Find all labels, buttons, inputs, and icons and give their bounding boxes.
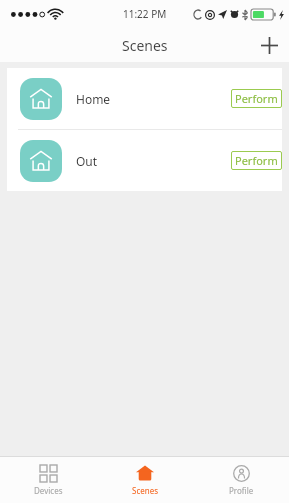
staticText: Scenes: [132, 485, 159, 496]
button[interactable]: Profile: [193, 457, 289, 503]
staticText: Perform: [235, 153, 278, 168]
staticText: Out: [76, 153, 98, 169]
button[interactable]: Perform: [231, 89, 282, 108]
staticText: Profile: [229, 485, 254, 496]
button[interactable]: Out: [7, 130, 282, 191]
staticText: Devices: [34, 485, 63, 496]
button[interactable]: Add scene: [249, 28, 289, 62]
button[interactable]: Home: [7, 68, 282, 129]
staticText: Scenes: [122, 36, 168, 55]
staticText: Home: [76, 91, 111, 107]
button[interactable]: Devices: [0, 457, 97, 503]
staticText: Perform: [235, 91, 278, 106]
button[interactable]: Scenes: [97, 457, 193, 503]
staticText: 11:22 PM: [123, 7, 167, 21]
button[interactable]: Perform: [231, 151, 282, 170]
